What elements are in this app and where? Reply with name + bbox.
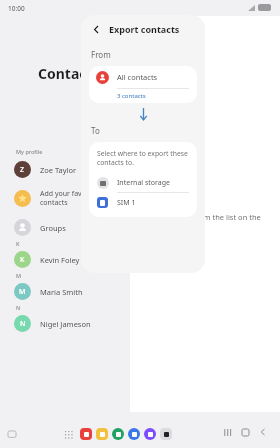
staticText: SIM 1 (117, 198, 136, 208)
button[interactable]: Apps (62, 428, 74, 440)
button[interactable]: Files (94, 426, 110, 442)
staticText: N (16, 304, 21, 311)
staticText: M (16, 272, 22, 279)
button[interactable]: Back (89, 22, 103, 36)
button[interactable]: Back (254, 423, 272, 441)
staticText: Zoe Taylor (40, 165, 77, 175)
staticText: Export contacts (109, 23, 180, 35)
button[interactable]: Groups (8, 216, 123, 238)
button[interactable]: All contacts (89, 66, 197, 103)
staticText: K (16, 240, 20, 247)
staticText: Z (20, 165, 25, 175)
staticText: Add your favourite contacts (40, 189, 102, 207)
button[interactable]: Phone (110, 426, 126, 442)
staticText: Select where to export these contacts to… (97, 149, 188, 167)
button[interactable]: Internal storage (97, 173, 197, 192)
button[interactable]: M (8, 280, 123, 302)
staticText: 3 contacts (117, 92, 146, 100)
button[interactable]: Accessibility (6, 429, 17, 440)
staticText: From (91, 49, 111, 60)
button[interactable]: Home (236, 423, 254, 441)
staticText: To (91, 125, 100, 136)
staticText: My profile (16, 148, 43, 155)
button[interactable]: SIM 1 (97, 193, 197, 212)
button[interactable]: Messages (126, 426, 142, 442)
button[interactable]: N (8, 312, 123, 334)
staticText: K (20, 255, 25, 265)
staticText: Kevin Foley (40, 255, 80, 265)
button[interactable]: Notes (78, 426, 94, 442)
button[interactable]: Add your favourite contacts (8, 183, 123, 213)
button[interactable]: Z (8, 158, 123, 180)
button[interactable]: Browser (142, 426, 158, 442)
button[interactable]: Recents (218, 423, 236, 441)
staticText: M (19, 287, 26, 297)
staticText: 10:00 (8, 4, 25, 13)
staticText: Internal storage (117, 178, 170, 188)
button[interactable]: Camera (158, 426, 174, 442)
staticText: All contacts (117, 72, 158, 82)
staticText: Contacts (38, 64, 100, 83)
staticText: N (20, 319, 26, 329)
staticText: Groups (40, 223, 66, 233)
button[interactable]: K (8, 248, 123, 270)
staticText: Maria Smith (40, 287, 83, 297)
staticText: Nigel Jameson (40, 319, 91, 329)
staticText: rom the list on the (196, 212, 261, 222)
